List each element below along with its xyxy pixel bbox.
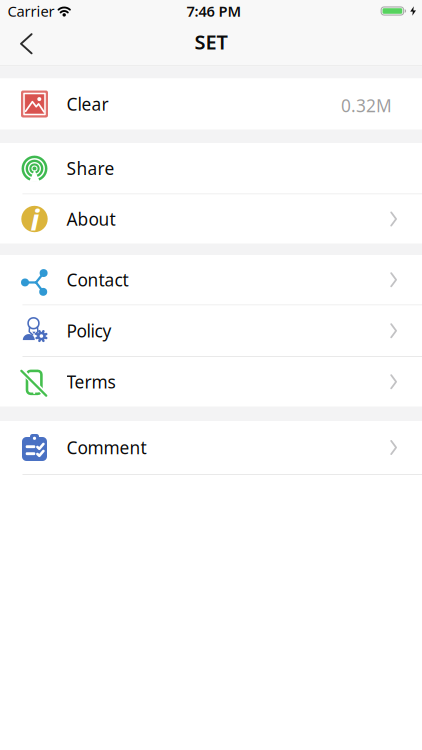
staticText: i (30, 199, 39, 239)
button[interactable]: Terms (0, 357, 422, 406)
staticText: Comment (66, 436, 146, 459)
button[interactable]: i (0, 194, 422, 243)
button[interactable]: Back (0, 23, 47, 64)
staticText: Carrier (7, 1, 54, 21)
staticText: 7:46 PM (186, 1, 241, 21)
staticText: 0.32M (341, 94, 392, 117)
staticText: Clear (66, 92, 108, 115)
staticText: Contact (66, 268, 128, 291)
button[interactable]: Contact (0, 255, 422, 304)
staticText: Policy (66, 319, 111, 342)
staticText: Terms (66, 370, 115, 393)
staticText: SET (194, 28, 227, 55)
button[interactable]: Policy (0, 305, 422, 356)
staticText: Share (66, 157, 114, 180)
button[interactable]: Comment (0, 421, 422, 474)
button[interactable]: Clear (0, 78, 422, 129)
staticText: About (66, 207, 115, 230)
button[interactable]: Share (0, 143, 422, 193)
